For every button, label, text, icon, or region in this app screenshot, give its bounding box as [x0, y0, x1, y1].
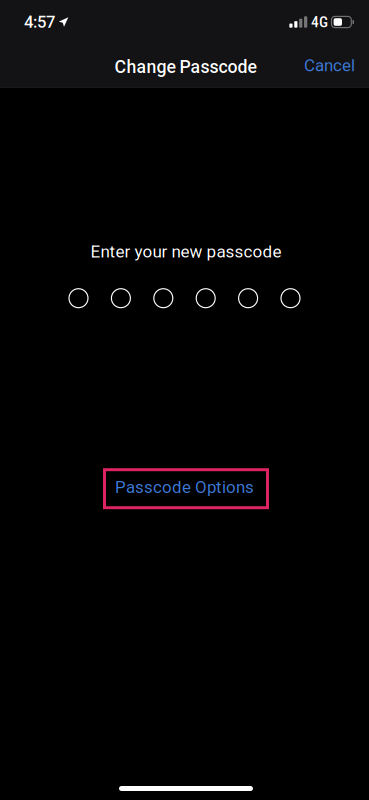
staticText: Cancel [304, 56, 355, 75]
button[interactable]: Cancel [290, 45, 369, 86]
staticText: Change Passcode [114, 57, 256, 77]
staticText: 4:57 [24, 12, 55, 32]
staticText: 4G [311, 13, 328, 31]
button[interactable]: Passcode Options [104, 470, 267, 508]
staticText: Enter your new passcode [90, 242, 281, 262]
staticText: Passcode Options [115, 477, 254, 497]
